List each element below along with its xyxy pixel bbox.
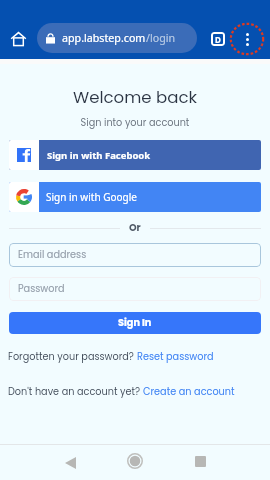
button[interactable]: Sign in with Google [9, 182, 261, 212]
button[interactable]: Reset password [137, 350, 214, 364]
staticText: Sign In [118, 316, 152, 330]
button[interactable]: Password [9, 277, 261, 301]
staticText: Don't have an account yet? [8, 385, 143, 399]
staticText: Or [129, 221, 141, 235]
staticText: Password [18, 282, 65, 296]
button[interactable]: Sign In [9, 312, 261, 334]
staticText: app.labstep.com [62, 31, 146, 46]
staticText: /login [146, 31, 176, 46]
button[interactable]: Home [6, 27, 30, 51]
button[interactable]: More options [230, 22, 264, 56]
button[interactable]: Sign in with Facebook [9, 140, 261, 170]
staticText: Sign in with Facebook [47, 149, 151, 162]
button[interactable]: Recent apps [185, 446, 215, 476]
staticText: D [215, 34, 221, 45]
staticText: Email address [18, 248, 87, 262]
staticText: Forgotten your password? [8, 350, 137, 364]
button[interactable]: Create an account [143, 385, 235, 399]
button[interactable]: Email address [9, 243, 261, 267]
staticText: Sign in with Google [46, 190, 137, 204]
button[interactable]: Back [55, 448, 85, 478]
button[interactable]: app.labstep.com [37, 23, 197, 53]
staticText: Sign into your account [0, 116, 270, 130]
button[interactable]: Home [120, 446, 150, 476]
staticText: Welcome back [0, 86, 270, 109]
button[interactable]: Tabs [206, 27, 230, 51]
